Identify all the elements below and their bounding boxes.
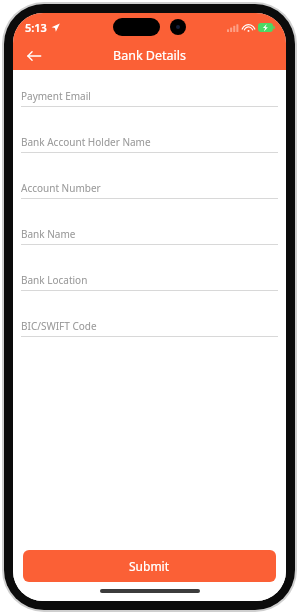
- staticText: Bank Details: [113, 47, 186, 64]
- button[interactable]: Bank Location: [21, 271, 278, 317]
- button[interactable]: Bank Account Holder Name: [21, 133, 278, 179]
- button[interactable]: Payment Email: [21, 87, 278, 133]
- staticText: BIC/SWIFT Code: [21, 319, 97, 333]
- button[interactable]: BIC/SWIFT Code: [21, 317, 278, 363]
- button[interactable]: Bank Name: [21, 225, 278, 271]
- button[interactable]: Back: [20, 42, 48, 70]
- staticText: 5:13: [25, 20, 47, 35]
- staticText: Submit: [129, 558, 170, 574]
- staticText: Bank Location: [21, 273, 88, 287]
- staticText: Bank Account Holder Name: [21, 135, 151, 149]
- button[interactable]: Account Number: [21, 179, 278, 225]
- staticText: Payment Email: [21, 89, 91, 103]
- staticText: Account Number: [21, 181, 101, 195]
- staticText: Bank Name: [21, 227, 76, 241]
- button[interactable]: Submit: [23, 550, 276, 582]
